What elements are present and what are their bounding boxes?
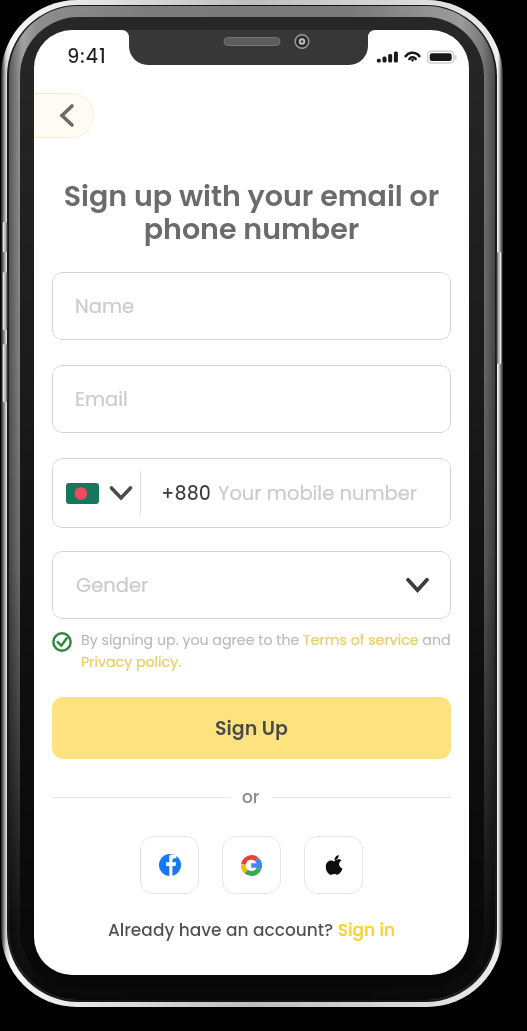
staticText: Sign up with your email or phone number xyxy=(34,176,469,249)
button[interactable]: Sign up with Google xyxy=(222,836,281,894)
button[interactable]: Back xyxy=(34,93,94,138)
button[interactable]: Email xyxy=(52,365,451,433)
button[interactable]: Already have an account? Sign in xyxy=(108,918,395,942)
staticText: Email xyxy=(75,386,128,413)
button[interactable]: Sign up with Facebook xyxy=(140,836,199,894)
button[interactable]: By signing up. you agree to the Terms of… xyxy=(81,630,451,672)
button[interactable]: +880 xyxy=(52,458,451,528)
staticText: or xyxy=(242,785,260,809)
staticText: Your mobile number xyxy=(218,480,418,507)
button[interactable]: Sign Up xyxy=(52,697,451,759)
staticText: Name xyxy=(75,293,135,320)
staticText: Sign Up xyxy=(215,715,288,742)
staticText: Gender xyxy=(76,572,149,599)
staticText: 9:41 xyxy=(67,43,107,70)
staticText: +880 xyxy=(161,480,211,507)
button[interactable]: Name xyxy=(52,272,451,340)
button[interactable]: Gender xyxy=(52,551,451,619)
button[interactable]: Sign up with Apple xyxy=(304,836,363,894)
